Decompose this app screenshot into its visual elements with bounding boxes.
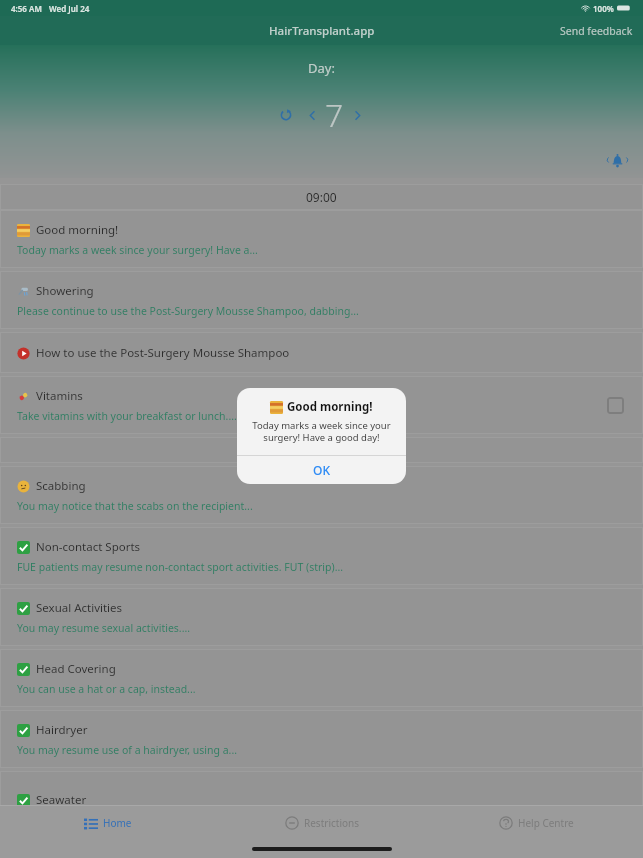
staticText: Help Centre [518, 816, 574, 830]
staticText: 7 [325, 93, 344, 137]
staticText: 4:56 AM [11, 3, 42, 14]
staticText: Day: [308, 59, 335, 77]
staticText: OK [313, 462, 330, 478]
staticText: Head Covering [36, 661, 116, 677]
staticText: You may notice that the scabs on the rec… [17, 499, 253, 513]
staticText: You can use a hat or a cap, instead... [17, 682, 196, 696]
staticText: Wed Jul 24 [49, 3, 90, 14]
button[interactable]: Restrictions [215, 806, 429, 839]
button[interactable]: Scabbing [0, 466, 643, 524]
button[interactable]: Send feedback [550, 18, 643, 44]
button[interactable]: Head Covering [0, 649, 643, 707]
staticText: Showering [36, 283, 94, 299]
staticText: Good morning! [36, 222, 119, 238]
staticText: You may resume use of a hairdryer, using… [17, 743, 238, 757]
button[interactable]: Refresh [273, 102, 299, 128]
button[interactable]: Help Centre [429, 806, 643, 839]
button[interactable]: Vitamins [0, 376, 643, 434]
staticText: How to use the Post-Surgery Mousse Shamp… [36, 345, 290, 361]
staticText: FUE patients may resume non-contact spor… [17, 560, 344, 574]
button[interactable]: Good morning! [0, 210, 643, 268]
button[interactable]: Seawater [0, 771, 643, 829]
button[interactable]: Mark complete [604, 394, 626, 416]
staticText: Take vitamins with your breakfast or lun… [17, 409, 237, 423]
staticText: Restrictions [304, 816, 359, 830]
staticText: Hairdryer [36, 722, 88, 738]
staticText: Vitamins [36, 388, 83, 404]
button[interactable]: Previous day [299, 102, 325, 128]
button[interactable]: Hairdryer [0, 710, 643, 768]
button[interactable]: OK [237, 456, 406, 484]
staticText: Today marks a week since your surgery! H… [17, 243, 258, 257]
staticText: Today marks a week since your surgery! H… [249, 419, 394, 444]
staticText: Good morning! [287, 399, 373, 415]
staticText: You may resume sexual activities.... [17, 621, 191, 635]
staticText: 100% [593, 3, 614, 14]
button[interactable]: Notifications [603, 146, 631, 174]
staticText: Seawater [36, 792, 87, 808]
staticText: Home [103, 816, 132, 830]
staticText: Sexual Activities [36, 600, 123, 616]
staticText: Non-contact Sports [36, 539, 141, 555]
staticText: HairTransplant.app [269, 23, 375, 39]
button[interactable]: Home [0, 806, 215, 839]
button[interactable]: Showering [0, 271, 643, 329]
button[interactable] [0, 437, 643, 463]
staticText: 09:00 [306, 189, 337, 205]
button[interactable]: Non-contact Sports [0, 527, 643, 585]
staticText: Send feedback [560, 24, 633, 38]
button[interactable]: How to use the Post-Surgery Mousse Shamp… [0, 332, 643, 373]
staticText: Scabbing [36, 478, 86, 494]
button[interactable]: Sexual Activities [0, 588, 643, 646]
button[interactable]: Next day [344, 102, 370, 128]
staticText: Please continue to use the Post-Surgery … [17, 304, 359, 318]
